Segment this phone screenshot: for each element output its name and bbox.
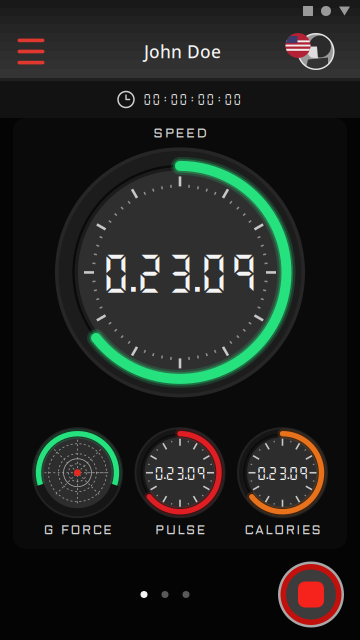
staticText: CALORIES — [244, 525, 321, 537]
staticText: G FORCE — [44, 525, 111, 537]
button[interactable]: Profile — [280, 28, 336, 74]
staticText: John Doe — [144, 40, 221, 63]
staticText: PULSE — [155, 525, 205, 537]
staticText: 00:00:00:00 — [143, 93, 242, 106]
button[interactable]: Menu — [2, 22, 60, 80]
staticText: 0.23.09 — [154, 464, 206, 481]
staticText: 0.23.09 — [256, 464, 308, 481]
staticText: SPEED — [153, 128, 207, 140]
staticText: 0.23.09 — [101, 248, 259, 296]
button[interactable]: Stop — [273, 556, 349, 632]
